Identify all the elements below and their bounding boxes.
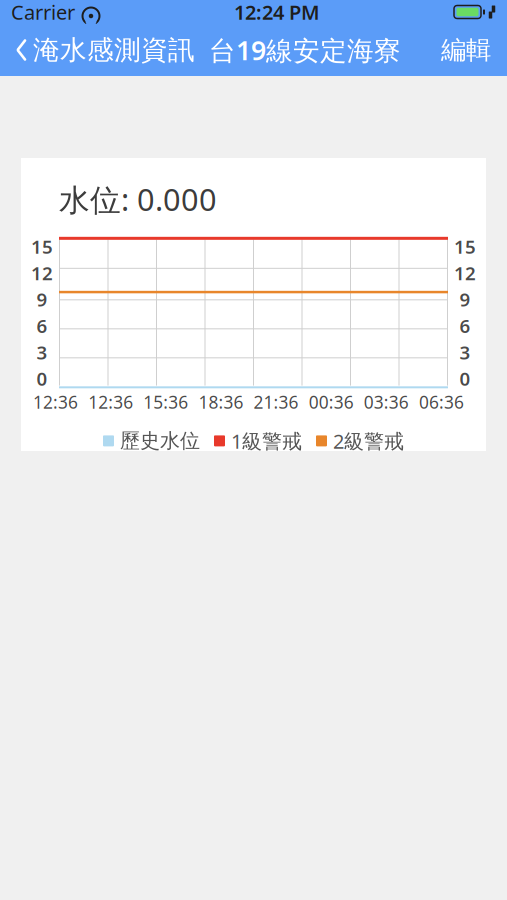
staticText: 水位: 0.000 [59, 179, 217, 219]
staticText: 12:36 [88, 391, 133, 414]
staticText: 2級警戒 [333, 428, 404, 454]
staticText: 9 [36, 287, 47, 312]
staticText: 9 [459, 287, 470, 312]
staticText: 21:36 [253, 391, 298, 414]
staticText: 12:36 [33, 391, 78, 414]
staticText: 15 [454, 234, 476, 259]
staticText: 12:24 PM [234, 0, 320, 25]
button[interactable]: 淹水感測資訊 [0, 28, 195, 72]
staticText: 淹水感測資訊 [33, 34, 195, 66]
staticText: 6 [36, 313, 47, 338]
staticText: 3 [36, 340, 47, 365]
staticText: Carrier [11, 0, 75, 25]
staticText: 15 [31, 234, 53, 259]
staticText: 0 [36, 366, 47, 391]
staticText: 0 [459, 366, 470, 391]
staticText: 06:36 [419, 391, 464, 414]
staticText: 1級警戒 [231, 428, 302, 454]
staticText: 18:36 [198, 391, 243, 414]
button[interactable]: 編輯 [441, 28, 507, 71]
staticText: 編輯 [441, 34, 491, 65]
staticText: 台19線安定海寮 [209, 32, 401, 68]
staticText: 6 [459, 313, 470, 338]
staticText: 12 [31, 261, 53, 285]
staticText: 3 [459, 340, 470, 365]
staticText: 12 [454, 261, 476, 285]
staticText: 15:36 [143, 391, 188, 414]
staticText: 03:36 [364, 391, 409, 414]
staticText: 00:36 [309, 391, 354, 414]
staticText: 歷史水位 [120, 429, 200, 453]
